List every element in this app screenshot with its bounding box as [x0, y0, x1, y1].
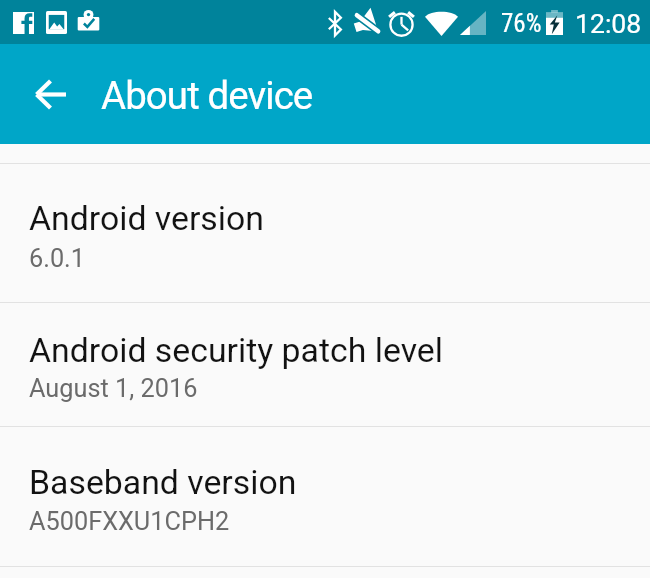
button[interactable]: Back: [24, 60, 77, 128]
button[interactable]: Android version: [0, 164, 650, 302]
staticText: 76%: [501, 9, 542, 38]
staticText: 12:08: [575, 8, 642, 39]
staticText: Android version: [29, 199, 264, 239]
button[interactable]: Baseband version: [0, 427, 650, 566]
staticText: Android security patch level: [29, 331, 443, 371]
staticText: Baseband version: [29, 463, 297, 503]
staticText: About device: [101, 73, 313, 118]
button[interactable]: Android security patch level: [0, 303, 650, 426]
staticText: August 1, 2016: [29, 374, 198, 404]
staticText: 6.0.1: [29, 244, 85, 274]
staticText: A500FXXU1CPH2: [29, 507, 230, 537]
